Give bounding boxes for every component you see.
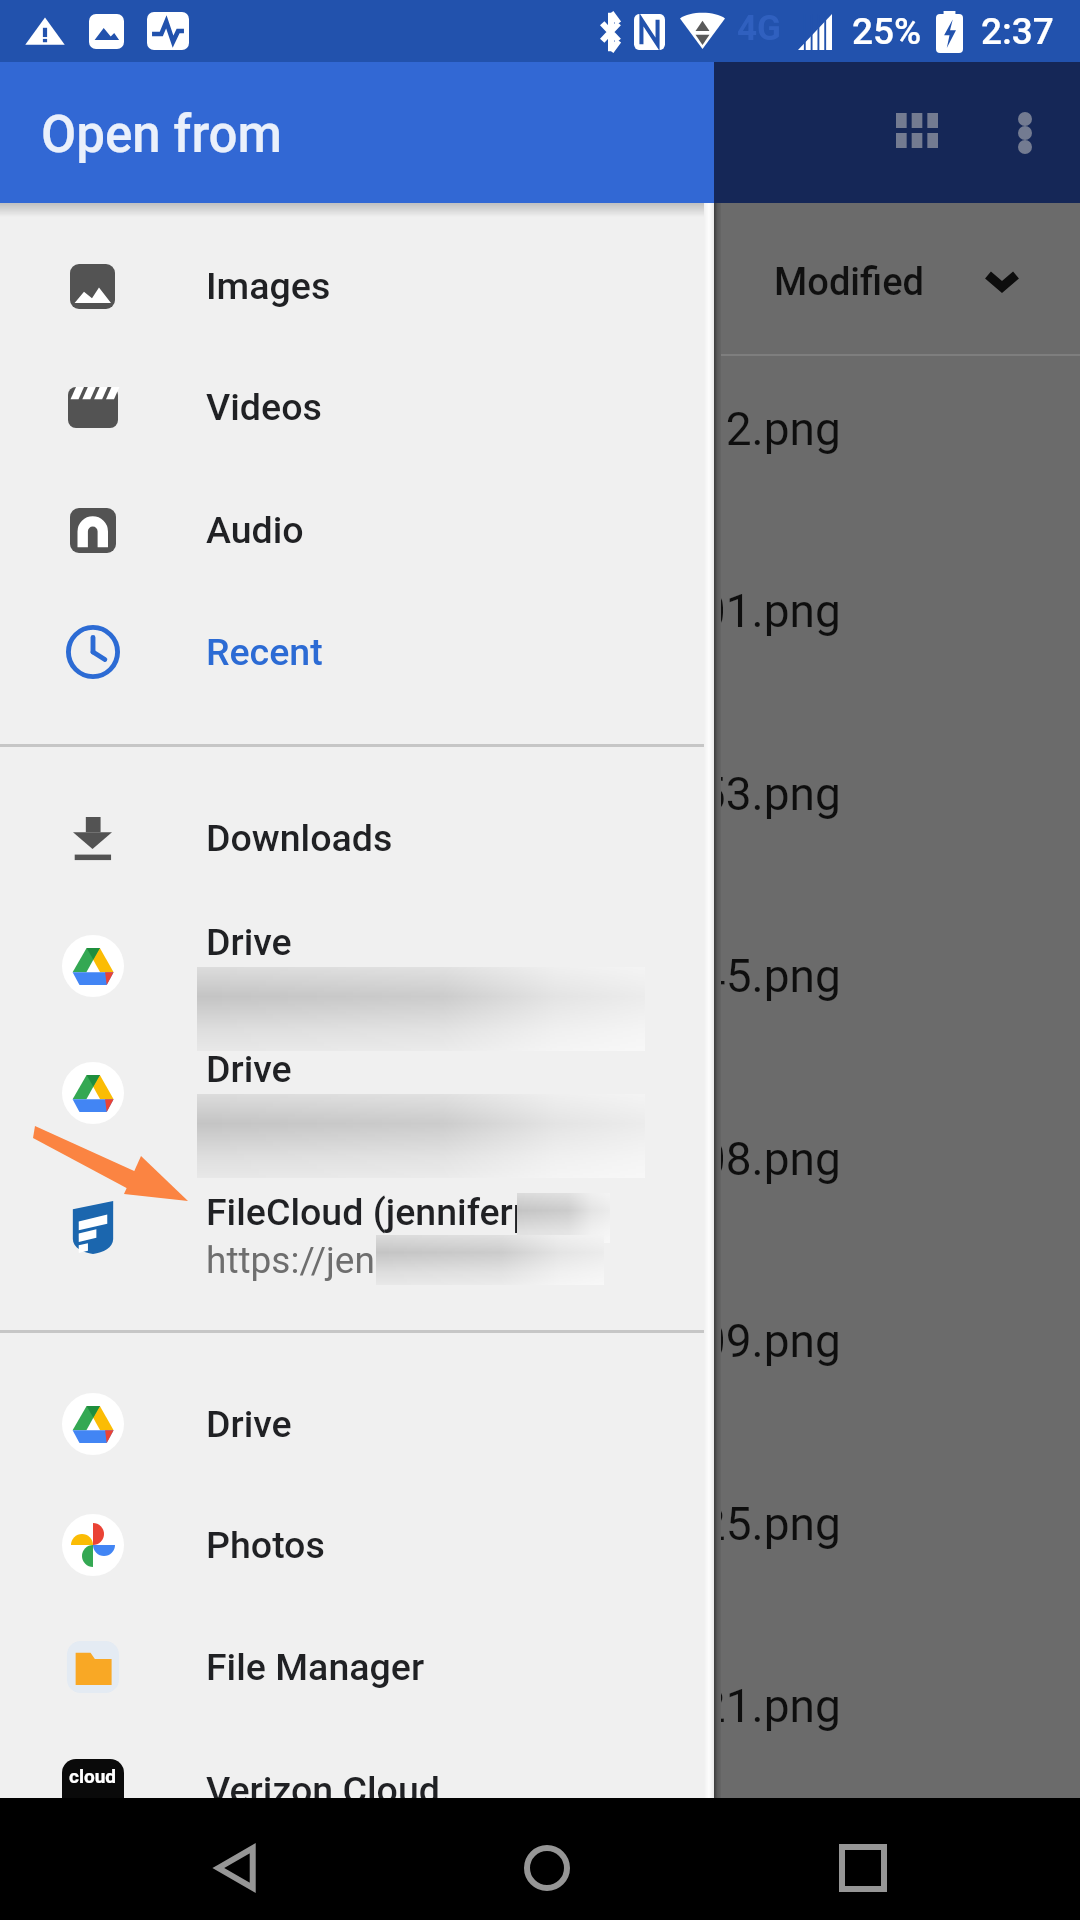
staticText: 4G <box>737 8 781 49</box>
button[interactable]: cloud <box>0 1729 714 1851</box>
staticText: Drive <box>206 1402 292 1446</box>
staticText: IMG_20190701.png <box>440 584 841 638</box>
staticText: cloud <box>69 1765 117 1787</box>
staticText: IMG_20190653.png <box>440 767 841 821</box>
staticText: Photos <box>206 1523 325 1567</box>
staticText: IMG_20190625.png <box>440 1497 841 1551</box>
staticText: https://jenp <box>206 1239 396 1282</box>
button[interactable]: IMG_20190609.png <box>0 1261 1080 1443</box>
staticText: IMG_20190712.png <box>440 402 841 456</box>
button[interactable]: Home <box>503 1824 591 1912</box>
button[interactable]: IMG_20190701.png <box>0 531 1080 713</box>
staticText: Open from <box>41 105 282 165</box>
button[interactable]: IMG_20190621.png <box>0 1626 1080 1808</box>
button[interactable]: Back <box>192 1824 280 1912</box>
button[interactable]: Modified <box>0 203 1080 354</box>
staticText: 25% <box>852 10 922 53</box>
button[interactable]: IMG_20190608.png <box>0 1079 1080 1261</box>
button[interactable]: Recents <box>819 1824 907 1912</box>
staticText: Images <box>206 264 331 308</box>
staticText: Downloads <box>206 816 393 860</box>
button[interactable]: Videos <box>0 346 714 468</box>
button[interactable]: IMG_20190712.png <box>0 349 1080 531</box>
button[interactable]: Drive <box>0 1363 714 1485</box>
staticText: 2:37 <box>981 10 1054 53</box>
staticText: IMG_20190609.png <box>440 1314 841 1368</box>
button[interactable]: More options <box>986 94 1064 172</box>
staticText: Modified <box>774 260 925 305</box>
staticText: Recent <box>206 630 323 674</box>
button[interactable]: Drive <box>0 902 714 1029</box>
button[interactable]: IMG_20190653.png <box>0 714 1080 896</box>
staticText: FileCloud (jenniferp <box>206 1190 534 1234</box>
button[interactable]: FileCloud (jenniferp <box>0 1182 714 1314</box>
button[interactable]: Recent <box>0 591 714 713</box>
staticText: IMG_20190645.png <box>440 949 841 1003</box>
staticText: Audio <box>206 508 304 552</box>
button[interactable]: Audio <box>0 469 714 591</box>
button[interactable]: Grid view <box>880 94 958 172</box>
button[interactable]: IMG_20190625.png <box>0 1444 1080 1626</box>
button[interactable]: Downloads <box>0 777 714 899</box>
button[interactable]: Drive <box>0 1029 714 1156</box>
button[interactable]: Photos <box>0 1484 714 1606</box>
button[interactable]: File Manager <box>0 1606 714 1728</box>
staticText: Verizon Cloud <box>206 1768 440 1812</box>
staticText: IMG_20190608.png <box>440 1132 841 1186</box>
staticText: IMG_20190621.png <box>440 1679 841 1733</box>
staticText: File Manager <box>206 1645 425 1689</box>
button[interactable]: Images <box>0 225 714 347</box>
staticText: Drive <box>206 1047 292 1091</box>
button[interactable]: IMG_20190645.png <box>0 896 1080 1078</box>
staticText: Videos <box>206 385 322 429</box>
staticText: Drive <box>206 920 292 964</box>
